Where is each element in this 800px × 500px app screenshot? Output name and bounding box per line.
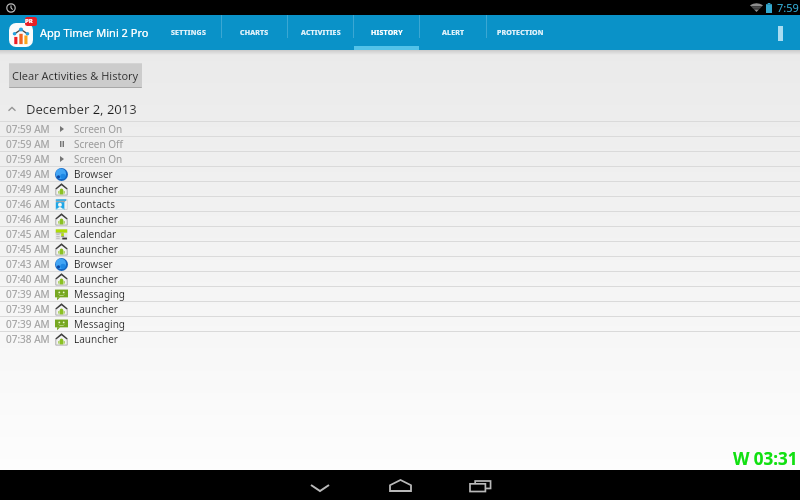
button[interactable]: HISTORY	[354, 15, 419, 50]
button[interactable]: PROTECTION	[487, 15, 554, 50]
staticText: Calendar	[74, 227, 117, 241]
staticText: App Timer Mini 2 Pro	[40, 25, 149, 40]
staticText: 07:59 AM	[6, 152, 50, 166]
staticText: 07:49 AM	[6, 182, 50, 196]
staticText: Clear Activities & History	[12, 68, 139, 83]
button[interactable]: SETTINGS	[155, 15, 221, 50]
button[interactable]: 07:49 AM	[0, 182, 800, 196]
button[interactable]: 07:40 AM	[0, 272, 800, 286]
staticText: PRO	[25, 17, 37, 26]
button[interactable]: 07:45 AM	[0, 242, 800, 256]
staticText: Browser	[74, 167, 113, 181]
staticText: 07:46 AM	[6, 197, 50, 211]
staticText: 07:39 AM	[6, 302, 50, 316]
staticText: 07:59 AM	[6, 122, 50, 136]
button[interactable]: CHARTS	[222, 15, 287, 50]
staticText: HISTORY	[371, 28, 403, 38]
staticText: W 03:31	[733, 447, 798, 470]
button[interactable]: More options	[761, 15, 800, 50]
staticText: December 2, 2013	[26, 100, 137, 118]
button[interactable]: 07:59 AM	[0, 122, 800, 136]
button[interactable]: Clear Activities & History	[9, 63, 142, 88]
staticText: PROTECTION	[497, 28, 544, 38]
button[interactable]: 07:59 AM	[0, 152, 800, 166]
button[interactable]: 07:39 AM	[0, 287, 800, 301]
button[interactable]: December 2, 2013	[0, 96, 800, 121]
button[interactable]: Recent apps	[440, 470, 520, 500]
staticText: 7:59	[777, 0, 799, 15]
button[interactable]: 07:38 AM	[0, 332, 800, 346]
staticText: 07:45 AM	[6, 227, 50, 241]
button[interactable]: ACTIVITIES	[288, 15, 353, 50]
button[interactable]: 07:46 AM	[0, 197, 800, 211]
button[interactable]: 07:49 AM	[0, 167, 800, 181]
staticText: CHARTS	[240, 28, 269, 38]
staticText: Launcher	[74, 302, 118, 316]
staticText: ALERT	[442, 28, 465, 38]
button[interactable]: 07:45 AM	[0, 227, 800, 241]
staticText: Launcher	[74, 182, 118, 196]
button[interactable]: Back	[280, 470, 360, 500]
staticText: Browser	[74, 257, 113, 271]
staticText: Screen On	[74, 122, 123, 136]
staticText: 07:38 AM	[6, 332, 50, 346]
staticText: ACTIVITIES	[301, 28, 341, 38]
staticText: Screen On	[74, 152, 123, 166]
staticText: 07:59 AM	[6, 137, 50, 151]
button[interactable]: ALERT	[420, 15, 486, 50]
button[interactable]: 07:43 AM	[0, 257, 800, 271]
staticText: Messaging	[74, 317, 125, 331]
staticText: 07:40 AM	[6, 272, 50, 286]
staticText: 07:39 AM	[6, 317, 50, 331]
staticText: 07:39 AM	[6, 287, 50, 301]
staticText: 07:46 AM	[6, 212, 50, 226]
staticText: 07:45 AM	[6, 242, 50, 256]
button[interactable]: 07:59 AM	[0, 137, 800, 151]
button[interactable]: 07:39 AM	[0, 302, 800, 316]
staticText: 07:43 AM	[6, 257, 50, 271]
button[interactable]: 07:39 AM	[0, 317, 800, 331]
staticText: Messaging	[74, 287, 125, 301]
staticText: Contacts	[74, 197, 115, 211]
staticText: Launcher	[74, 272, 118, 286]
staticText: SETTINGS	[171, 28, 206, 38]
staticText: Screen Off	[74, 137, 123, 151]
staticText: 07:49 AM	[6, 167, 50, 181]
staticText: Launcher	[74, 242, 118, 256]
button[interactable]: Home	[360, 470, 440, 500]
button[interactable]: PRO	[9, 17, 37, 47]
staticText: Launcher	[74, 332, 118, 346]
button[interactable]: 07:46 AM	[0, 212, 800, 226]
staticText: Launcher	[74, 212, 118, 226]
